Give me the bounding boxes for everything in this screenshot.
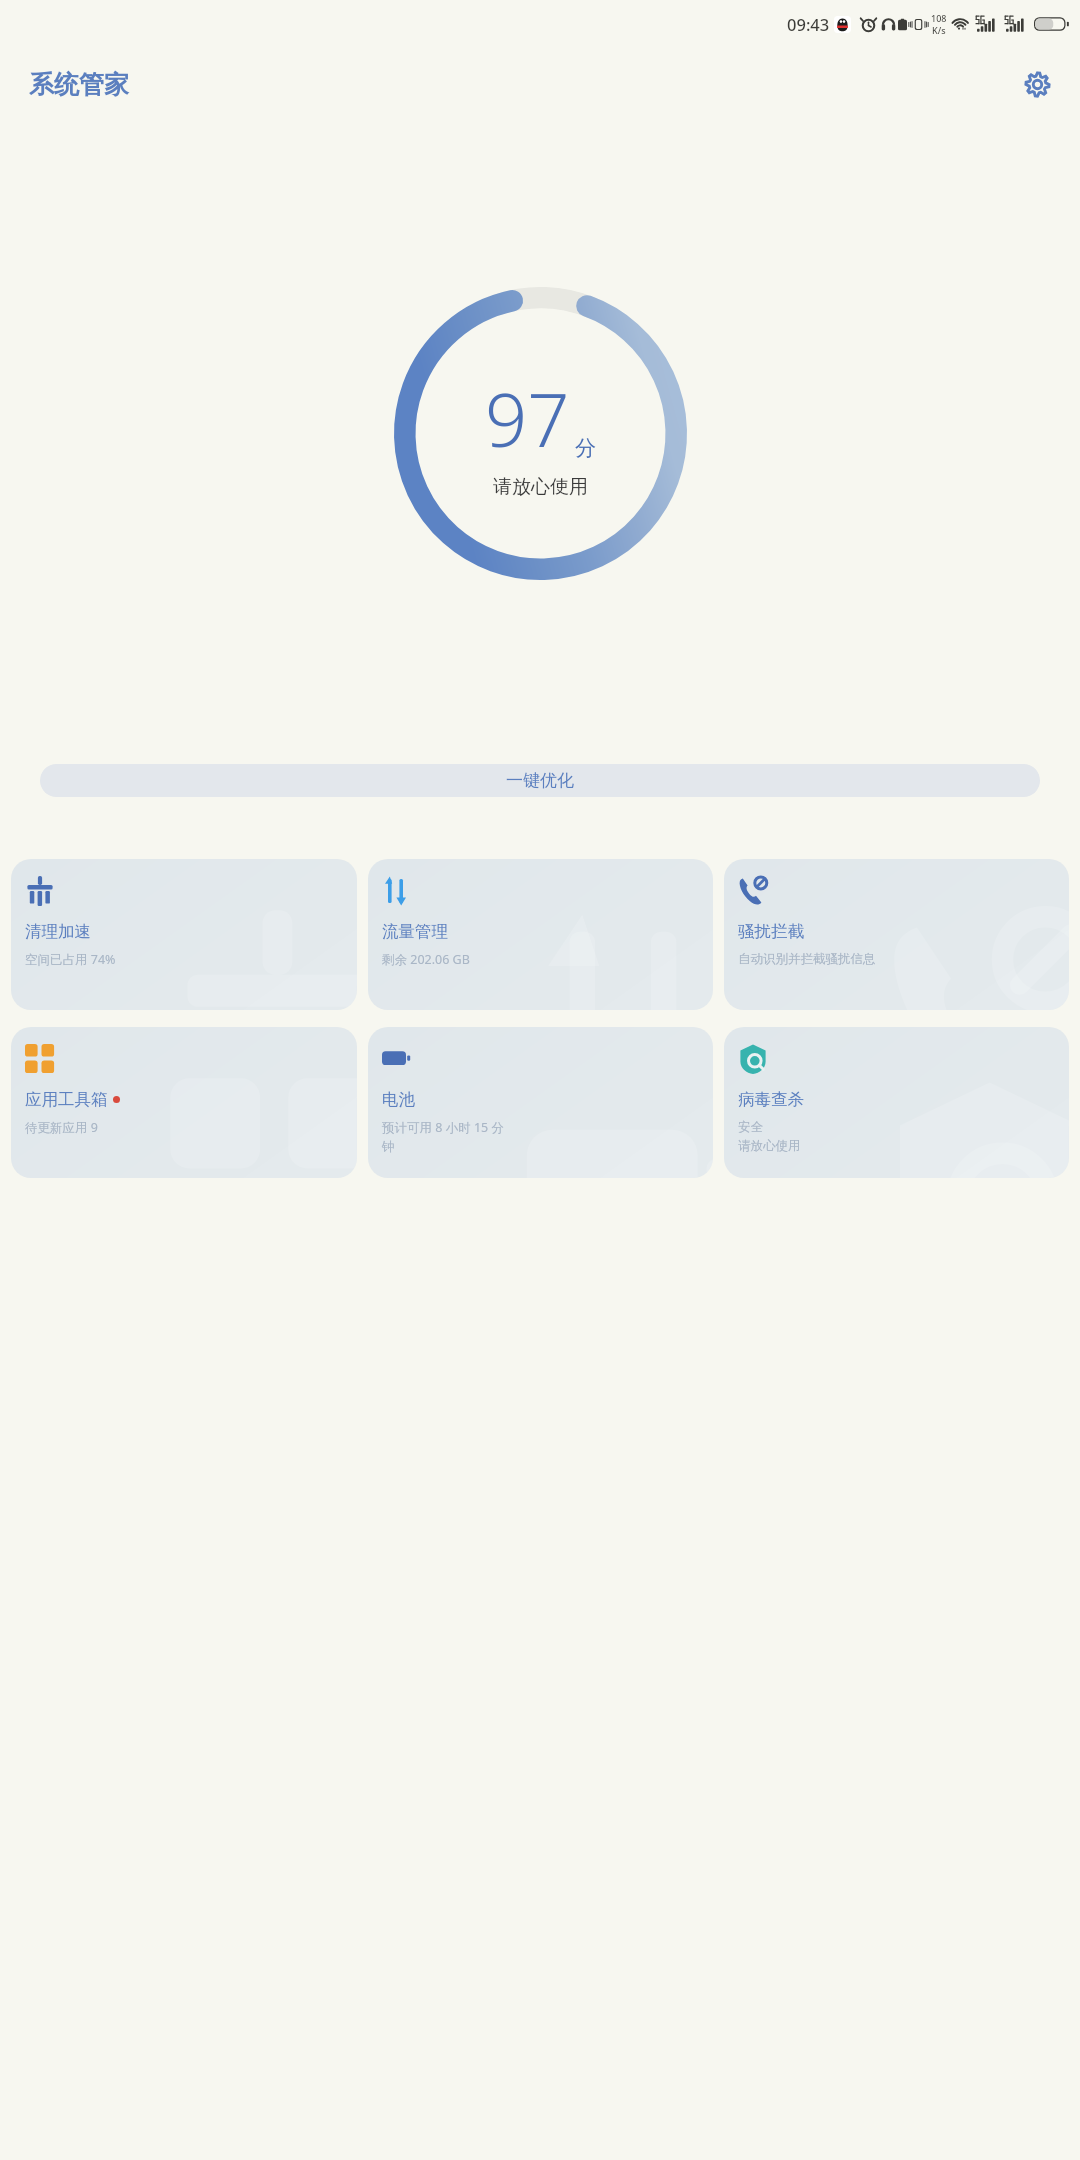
button[interactable]: 电池 (368, 1027, 713, 1178)
staticText: 09:43 (787, 13, 830, 35)
staticText: 骚扰拦截 (738, 921, 804, 942)
button[interactable]: 骚扰拦截 (724, 859, 1069, 1010)
button[interactable]: 应用工具箱 (11, 1027, 357, 1178)
staticText: 应用工具箱 (25, 1089, 108, 1110)
staticText: 请放心使用 (738, 1138, 801, 1154)
staticText: 清理加速 (25, 921, 91, 942)
button[interactable]: 清理加速 (11, 859, 357, 1010)
staticText: 病毒查杀 (738, 1089, 804, 1110)
staticText: 请放心使用 (493, 475, 588, 499)
staticText: 一键优化 (506, 770, 574, 791)
staticText: 108 (931, 12, 947, 24)
staticText: 系统管家 (29, 69, 129, 100)
staticText: K/s (932, 24, 946, 36)
staticText: 空间已占用 74% (25, 951, 116, 968)
staticText: 待更新应用 9 (25, 1119, 98, 1136)
staticText: 预计可用 8 小时 15 分 (382, 1119, 504, 1136)
button[interactable]: 病毒查杀 (724, 1027, 1069, 1178)
staticText: 97 (485, 368, 570, 469)
staticText: 安全 (738, 1119, 763, 1135)
button[interactable]: Settings (1015, 62, 1059, 106)
staticText: 电池 (382, 1089, 415, 1110)
staticText: 分 (575, 435, 596, 461)
button[interactable]: 一键优化 (40, 764, 1040, 797)
staticText: 钟 (382, 1139, 395, 1155)
staticText: 剩余 202.06 GB (382, 951, 470, 968)
staticText: 自动识别并拦截骚扰信息 (738, 951, 876, 967)
button[interactable]: 流量管理 (368, 859, 713, 1010)
staticText: 流量管理 (382, 921, 448, 942)
